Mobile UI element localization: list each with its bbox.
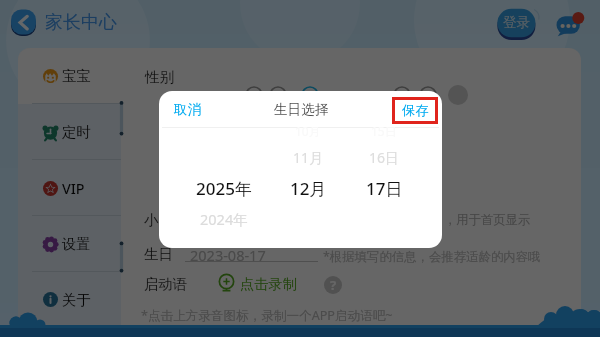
button[interactable]: Help xyxy=(324,276,342,294)
button[interactable] xyxy=(245,86,263,104)
button[interactable] xyxy=(269,86,287,104)
button[interactable]: 登录 xyxy=(495,6,538,41)
button[interactable]: 取消 xyxy=(167,96,207,122)
button[interactable]: 17日 xyxy=(339,175,429,201)
staticText: 定时 xyxy=(62,123,91,141)
staticText: 点击录制 xyxy=(240,275,298,293)
staticText: 小名 xyxy=(144,211,173,229)
staticText: 保存 xyxy=(402,102,429,119)
button[interactable]: Back xyxy=(10,9,37,36)
staticText: 生日 xyxy=(144,245,173,263)
staticText: ? xyxy=(330,276,337,294)
button[interactable]: 保存 xyxy=(392,97,438,124)
staticText: 设置 xyxy=(62,235,91,253)
button[interactable]: VIP xyxy=(18,160,121,216)
button[interactable]: 定时 xyxy=(18,104,121,160)
staticText: 取消 xyxy=(174,101,201,118)
button[interactable]: 设置 xyxy=(18,216,121,272)
staticText: 性别 xyxy=(145,68,174,86)
staticText: 登录 xyxy=(503,14,530,31)
staticText: 生日选择 xyxy=(274,101,329,118)
button[interactable] xyxy=(301,86,319,104)
staticText: 启动语 xyxy=(144,275,187,293)
staticText: VIP xyxy=(62,179,85,198)
button[interactable] xyxy=(393,86,411,104)
button[interactable]: Messages xyxy=(552,10,584,42)
staticText: 12月 xyxy=(290,177,327,200)
staticText: 2025年 xyxy=(196,177,252,200)
button[interactable]: 关于 xyxy=(18,272,121,327)
staticText: 宝宝 xyxy=(62,67,91,85)
staticText: 16日 xyxy=(369,148,400,167)
staticText: *点击上方录音图标，录制一个APP启动语吧~ xyxy=(141,307,393,324)
button[interactable]: 12月 xyxy=(263,175,353,201)
staticText: 2023-08-17 xyxy=(190,245,266,265)
button[interactable]: Record xyxy=(218,274,235,291)
button[interactable] xyxy=(419,86,437,104)
staticText: 关于 xyxy=(62,291,91,309)
button[interactable]: 宝宝 xyxy=(18,48,121,104)
staticText: *根据填写的信息，会推荐适龄的内容哦 xyxy=(323,248,541,265)
button[interactable]: 2025年 xyxy=(179,175,269,201)
staticText: 11月 xyxy=(293,148,324,167)
staticText: ，用于首页显示 xyxy=(444,212,531,227)
staticText: 家长中心 xyxy=(45,11,117,34)
staticText: 2024年 xyxy=(200,209,248,229)
staticText: 17日 xyxy=(366,177,403,200)
staticText: 15日 xyxy=(371,123,397,139)
staticText: 10月 xyxy=(295,123,321,139)
